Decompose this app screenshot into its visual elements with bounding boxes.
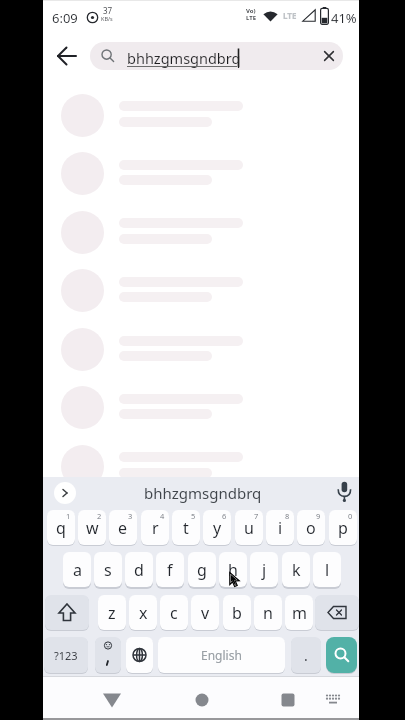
- staticText: 0: [348, 511, 353, 521]
- button[interactable]: i: [266, 510, 294, 545]
- button[interactable]: v: [191, 595, 219, 630]
- staticText: t: [183, 517, 189, 539]
- button[interactable]: w: [78, 510, 106, 545]
- staticText: j: [262, 559, 267, 581]
- button[interactable]: p: [329, 510, 357, 545]
- button[interactable]: [324, 51, 334, 61]
- staticText: English: [201, 647, 242, 663]
- button[interactable]: j: [250, 552, 278, 587]
- staticText: x: [139, 602, 148, 624]
- staticText: o: [306, 517, 316, 539]
- staticText: a: [73, 559, 82, 581]
- button[interactable]: o: [297, 510, 325, 545]
- staticText: 9: [316, 511, 321, 521]
- staticText: ?123: [54, 648, 78, 663]
- button[interactable]: a: [63, 552, 91, 587]
- button[interactable]: u: [235, 510, 263, 545]
- button[interactable]: [126, 637, 153, 673]
- staticText: 7: [254, 511, 259, 521]
- staticText: p: [338, 517, 348, 539]
- button[interactable]: [45, 595, 89, 630]
- staticText: LTE: [246, 14, 257, 22]
- staticText: 6: [222, 511, 227, 521]
- staticText: u: [244, 517, 254, 539]
- button[interactable]: e: [109, 510, 137, 545]
- button[interactable]: [95, 637, 121, 673]
- staticText: 5: [191, 511, 196, 521]
- staticText: h: [228, 559, 238, 581]
- button[interactable]: [54, 482, 76, 504]
- button[interactable]: z: [98, 595, 126, 630]
- staticText: v: [201, 602, 210, 624]
- staticText: 37: [103, 5, 113, 16]
- button[interactable]: b: [223, 595, 251, 630]
- staticText: z: [108, 602, 116, 624]
- staticText: 6:09: [52, 9, 78, 27]
- button[interactable]: s: [94, 552, 122, 587]
- staticText: 8: [285, 511, 290, 521]
- button[interactable]: r: [141, 510, 169, 545]
- button[interactable]: [272, 684, 304, 716]
- button[interactable]: [186, 684, 218, 716]
- staticText: c: [170, 602, 178, 624]
- button[interactable]: n: [254, 595, 282, 630]
- staticText: q: [56, 517, 66, 539]
- staticText: w: [86, 517, 99, 539]
- button[interactable]: [96, 684, 128, 716]
- staticText: LTE: [283, 10, 297, 21]
- button[interactable]: q: [47, 510, 75, 545]
- button[interactable]: English: [158, 637, 285, 673]
- staticText: 41%: [331, 9, 357, 27]
- staticText: i: [278, 517, 283, 539]
- staticText: .: [304, 646, 308, 665]
- button[interactable]: d: [125, 552, 153, 587]
- button[interactable]: h: [219, 552, 247, 587]
- button[interactable]: [315, 595, 359, 630]
- button[interactable]: g: [188, 552, 216, 587]
- staticText: KB/s: [101, 15, 113, 22]
- staticText: bhhzgmsgndbrq: [144, 483, 262, 503]
- staticText: r: [152, 517, 159, 539]
- staticText: Vo): [246, 7, 256, 15]
- staticText: s: [104, 559, 112, 581]
- staticText: n: [263, 602, 273, 624]
- staticText: l: [325, 559, 330, 581]
- staticText: f: [167, 559, 173, 581]
- button[interactable]: l: [313, 552, 341, 587]
- button[interactable]: ?123: [44, 637, 88, 673]
- staticText: k: [292, 559, 301, 581]
- button[interactable]: k: [282, 552, 310, 587]
- button[interactable]: t: [172, 510, 200, 545]
- staticText: bhhzgmsgndbrq: [127, 48, 241, 68]
- button[interactable]: x: [129, 595, 157, 630]
- staticText: b: [232, 602, 242, 624]
- button[interactable]: [49, 39, 85, 75]
- staticText: 1: [66, 511, 71, 521]
- button[interactable]: [322, 688, 344, 710]
- button[interactable]: f: [156, 552, 184, 587]
- button[interactable]: [337, 481, 352, 503]
- button[interactable]: c: [160, 595, 188, 630]
- staticText: 4: [160, 511, 165, 521]
- staticText: 2: [97, 511, 102, 521]
- staticText: g: [197, 559, 207, 581]
- button[interactable]: .: [291, 637, 321, 673]
- button[interactable]: y: [203, 510, 231, 545]
- staticText: m: [292, 602, 307, 624]
- button[interactable]: m: [285, 595, 313, 630]
- staticText: e: [118, 517, 128, 539]
- staticText: d: [134, 559, 144, 581]
- staticText: 3: [128, 511, 133, 521]
- staticText: y: [213, 517, 222, 539]
- button[interactable]: [326, 637, 357, 673]
- button[interactable]: bhhzgmsgndbrq: [90, 42, 343, 70]
